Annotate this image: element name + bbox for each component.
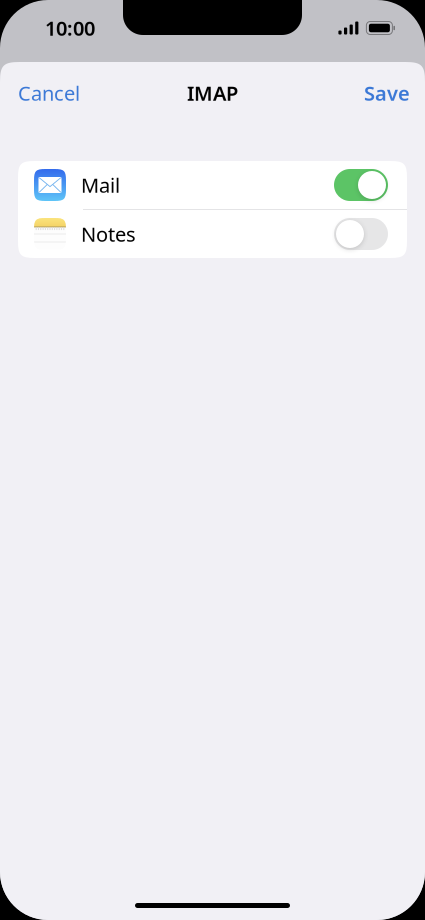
staticText: IMAP bbox=[187, 80, 238, 106]
staticText: 10:00 bbox=[45, 15, 95, 41]
button[interactable]: Save bbox=[364, 80, 410, 106]
staticText: Save bbox=[364, 80, 410, 106]
staticText: Cancel bbox=[18, 80, 80, 106]
staticText: Mail bbox=[81, 172, 120, 198]
button[interactable]: Notes bbox=[18, 210, 407, 258]
button[interactable]: Mail bbox=[18, 161, 407, 209]
staticText: Notes bbox=[81, 221, 136, 247]
button[interactable]: Cancel bbox=[18, 80, 80, 106]
